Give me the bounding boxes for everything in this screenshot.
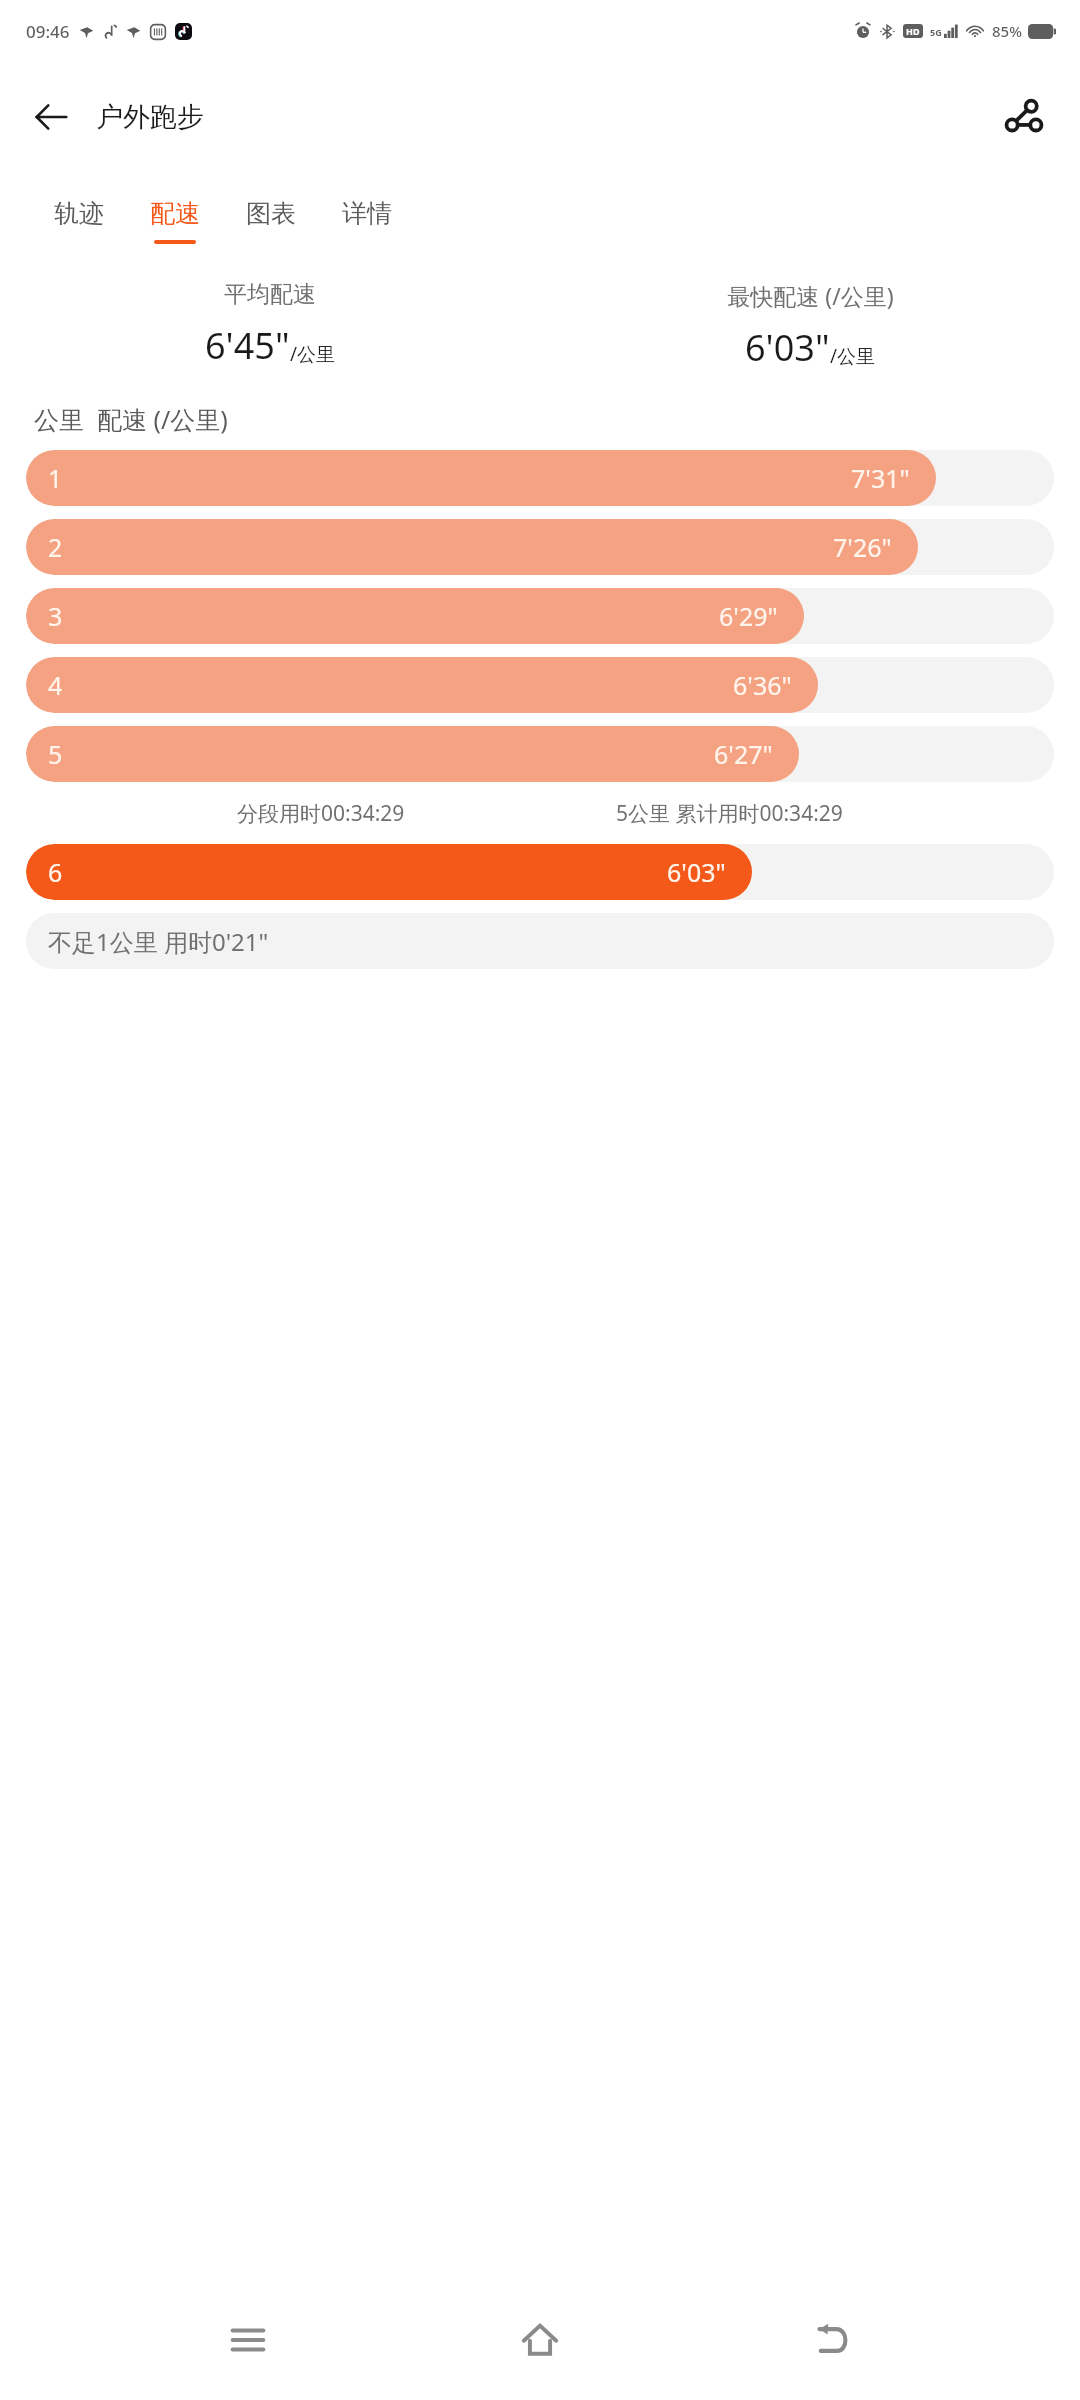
button[interactable]: Home (495, 2295, 585, 2385)
staticText: 7'26" (833, 530, 892, 564)
staticText: 不足1公里 用时0'21" (48, 925, 269, 958)
staticText: 5 (48, 737, 63, 771)
staticText: /公里 (290, 341, 336, 367)
staticText: 2 (48, 530, 63, 564)
button[interactable]: 轨迹 (38, 198, 120, 244)
staticText: 最快配速 (/公里) (727, 280, 894, 311)
staticText: 6'03" (745, 323, 830, 372)
button[interactable]: 图表 (230, 198, 312, 244)
staticText: 5公里 累计用时00:34:29 (616, 799, 843, 828)
staticText: 6'36" (733, 668, 792, 702)
staticText: 3 (48, 599, 63, 633)
staticText: 6'03" (667, 855, 726, 889)
button[interactable]: Recent apps (203, 2295, 293, 2385)
staticText: 分段用时00:34:29 (237, 799, 405, 828)
staticText: 平均配速 (224, 280, 316, 309)
staticText: 5G (930, 26, 942, 38)
button[interactable]: 6 (26, 844, 1054, 900)
button[interactable]: 不足1公里 用时0'21" (26, 913, 1054, 969)
staticText: 6'29" (719, 599, 778, 633)
staticText: 6'27" (714, 737, 773, 771)
staticText: 户外跑步 (96, 100, 204, 134)
staticText: 6'45" (205, 321, 290, 370)
staticText: 配速 (150, 198, 200, 229)
staticText: 85% (992, 21, 1022, 41)
button[interactable]: 配速 (134, 198, 216, 244)
staticText: 公里 配速 (/公里) (34, 402, 228, 436)
staticText: 详情 (342, 198, 392, 229)
button[interactable]: Back (788, 2295, 878, 2385)
staticText: 图表 (246, 198, 296, 229)
button[interactable]: 2 (26, 519, 1054, 575)
staticText: /公里 (830, 343, 876, 369)
button[interactable]: Back (20, 86, 82, 148)
staticText: HD (906, 25, 920, 37)
staticText: 4 (48, 668, 63, 702)
button[interactable]: 4 (26, 657, 1054, 713)
staticText: 轨迹 (54, 198, 104, 229)
button[interactable]: Share (994, 87, 1054, 147)
staticText: 09:46 (26, 20, 70, 43)
staticText: 6 (48, 855, 63, 889)
button[interactable]: 3 (26, 588, 1054, 644)
staticText: 1 (48, 461, 63, 495)
staticText: 7'31" (851, 461, 910, 495)
button[interactable]: 5 (26, 726, 1054, 782)
button[interactable]: 详情 (326, 198, 408, 244)
button[interactable]: 1 (26, 450, 1054, 506)
